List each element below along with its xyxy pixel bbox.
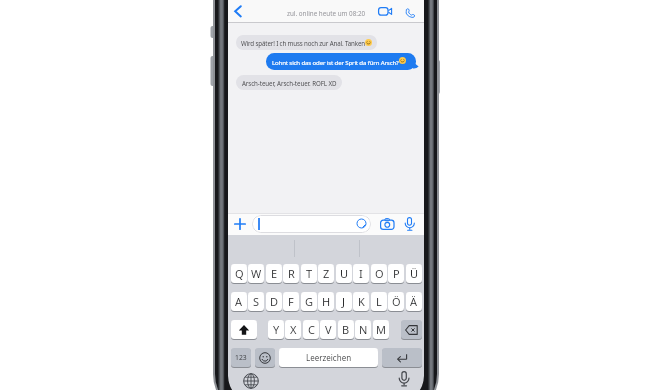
button[interactable] [378, 7, 394, 16]
button[interactable] [404, 217, 415, 231]
staticText: 123 [235, 353, 247, 362]
staticText: Q [235, 266, 244, 281]
button[interactable]: J [336, 292, 352, 311]
button[interactable] [233, 5, 243, 18]
button[interactable]: H [318, 292, 334, 311]
button[interactable]: N [355, 320, 371, 339]
staticText: I [359, 266, 363, 281]
button[interactable] [234, 218, 246, 230]
staticText: W [251, 266, 262, 281]
button[interactable]: W [248, 264, 264, 283]
staticText: K [358, 294, 365, 309]
button[interactable] [401, 320, 422, 339]
staticText: J [342, 294, 346, 309]
staticText: zul. online heute um 08:20 [287, 9, 366, 18]
staticText: U [340, 266, 349, 281]
staticText: F [288, 294, 294, 309]
button[interactable]: X [285, 320, 301, 339]
button[interactable] [252, 215, 371, 233]
button[interactable]: Y [268, 320, 284, 339]
button[interactable] [255, 348, 275, 367]
button[interactable]: O [371, 264, 387, 283]
button[interactable] [403, 6, 415, 18]
button[interactable] [380, 218, 395, 230]
button[interactable]: A [231, 292, 247, 311]
button[interactable]: P [388, 264, 404, 283]
button[interactable] [382, 348, 422, 367]
button[interactable]: C [303, 320, 319, 339]
button[interactable] [243, 373, 259, 389]
button[interactable]: Ä [406, 292, 422, 311]
button[interactable]: M [373, 320, 389, 339]
staticText: N [359, 322, 368, 337]
staticText: Arsch-teuer, Arsch-teuer. ROFL XD [242, 79, 337, 87]
staticText: X [290, 322, 297, 337]
staticText: C [308, 322, 315, 337]
staticText: Y [273, 322, 280, 337]
button[interactable]: Ö [388, 292, 404, 311]
button[interactable]: I [353, 264, 369, 283]
staticText: O [375, 266, 384, 281]
staticText: M [376, 322, 386, 337]
button[interactable] [398, 371, 410, 387]
staticText: D [270, 294, 279, 309]
staticText: L [376, 294, 382, 309]
button[interactable]: D [266, 292, 282, 311]
button[interactable]: Q [231, 264, 247, 283]
staticText: S [253, 294, 260, 309]
button[interactable]: T [301, 264, 317, 283]
staticText: Lohnt sich das oder ist der Sprit da für… [272, 58, 399, 66]
button[interactable]: B [338, 320, 354, 339]
button[interactable]: R [283, 264, 299, 283]
button[interactable]: E [266, 264, 282, 283]
button[interactable]: Z [318, 264, 334, 283]
button[interactable]: Leerzeichen [279, 348, 378, 367]
button[interactable]: U [336, 264, 352, 283]
button[interactable]: K [353, 292, 369, 311]
staticText: Z [323, 266, 330, 281]
button[interactable]: S [248, 292, 264, 311]
button[interactable]: G [301, 292, 317, 311]
button[interactable]: F [283, 292, 299, 311]
staticText: P [393, 266, 400, 281]
staticText: V [325, 322, 332, 337]
staticText: A [235, 294, 243, 309]
staticText: B [342, 322, 350, 337]
button[interactable]: 123 [231, 348, 251, 367]
staticText: E [271, 266, 278, 281]
staticText: Ö [392, 294, 401, 309]
button[interactable] [231, 320, 257, 339]
staticText: H [322, 294, 331, 309]
staticText: Ä [410, 294, 418, 309]
staticText: G [305, 294, 314, 309]
staticText: R [288, 266, 295, 281]
button[interactable] [356, 218, 367, 229]
staticText: Leerzeichen [306, 352, 352, 363]
button[interactable]: Ü [406, 264, 422, 283]
staticText: Wird später! I ch muss noch zur Anal. Ta… [241, 39, 365, 47]
staticText: T [306, 266, 313, 281]
staticText: Ü [410, 266, 419, 281]
button[interactable]: V [320, 320, 336, 339]
button[interactable]: L [371, 292, 387, 311]
